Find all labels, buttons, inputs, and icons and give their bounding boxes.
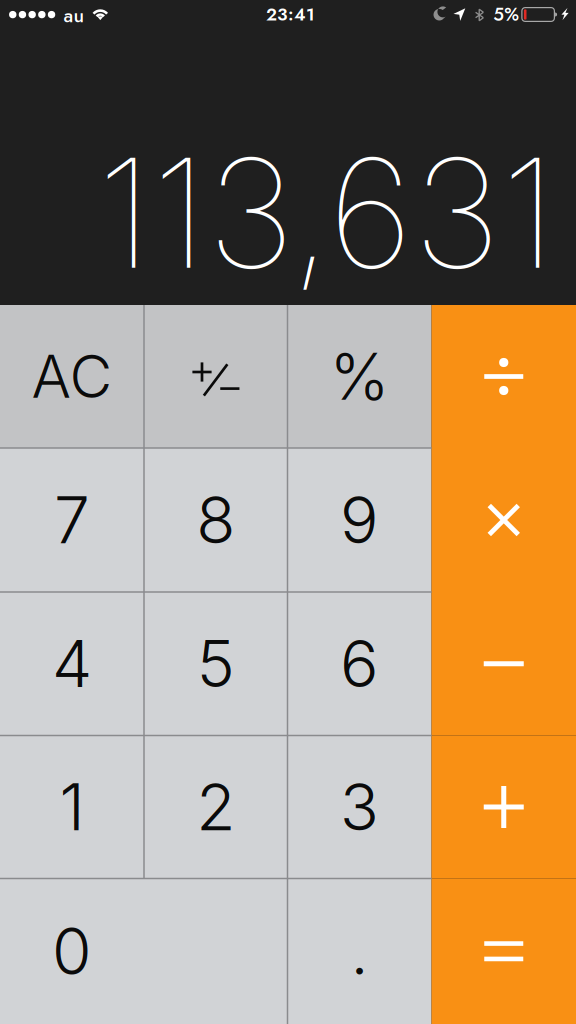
button[interactable]: 2 bbox=[144, 735, 287, 878]
button[interactable]: 9 bbox=[287, 448, 431, 592]
button[interactable]: 8 bbox=[144, 448, 287, 592]
staticText: 5 bbox=[197, 625, 235, 702]
staticText: % bbox=[329, 338, 389, 415]
staticText: 3 bbox=[340, 768, 379, 846]
button[interactable]: Plus bbox=[431, 735, 576, 878]
button[interactable]: AC bbox=[0, 305, 144, 448]
button[interactable]: 4 bbox=[0, 592, 144, 735]
button[interactable]: . bbox=[287, 878, 431, 1024]
staticText: 1 bbox=[59, 768, 84, 846]
staticText: 5% bbox=[493, 1, 519, 27]
button[interactable]: 1 bbox=[0, 735, 144, 878]
button[interactable]: 5 bbox=[144, 592, 287, 735]
staticText: . bbox=[350, 912, 368, 990]
button[interactable]: Equals bbox=[431, 878, 576, 1024]
staticText: 0 bbox=[52, 912, 92, 990]
button[interactable]: 3 bbox=[287, 735, 431, 878]
staticText: 6 bbox=[340, 625, 379, 702]
button[interactable]: Divide bbox=[431, 305, 576, 448]
staticText: 4 bbox=[52, 625, 92, 702]
button[interactable]: 6 bbox=[287, 592, 431, 735]
staticText: AC bbox=[31, 341, 112, 412]
button[interactable]: 0 bbox=[0, 878, 287, 1024]
staticText: 8 bbox=[196, 481, 235, 559]
staticText: au bbox=[63, 1, 84, 29]
staticText: 2 bbox=[196, 768, 235, 846]
button[interactable]: 7 bbox=[0, 448, 144, 592]
button[interactable]: Plus minus bbox=[144, 305, 287, 448]
button[interactable]: Minus bbox=[431, 592, 576, 735]
button[interactable]: % bbox=[287, 305, 431, 448]
staticText: 9 bbox=[340, 481, 379, 559]
staticText: 7 bbox=[54, 481, 90, 559]
button[interactable]: Multiply bbox=[431, 448, 576, 592]
staticText: 23:41 bbox=[266, 2, 315, 27]
staticText: 113,631 bbox=[97, 122, 556, 304]
